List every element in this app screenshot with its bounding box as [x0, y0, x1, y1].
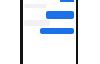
button[interactable] [46, 11, 74, 19]
button[interactable] [40, 28, 74, 34]
